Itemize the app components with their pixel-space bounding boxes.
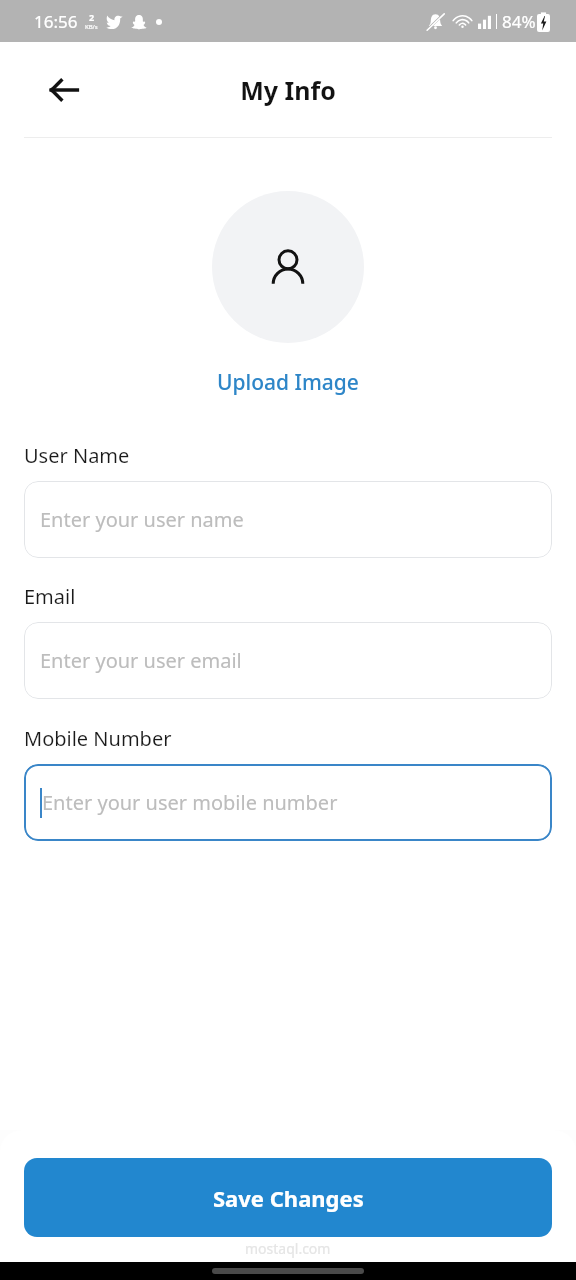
staticText: 16:56 [34,10,78,33]
staticText: 2 [89,11,95,23]
button[interactable]: Profile photo [212,191,364,343]
button[interactable]: Upload Image [211,366,365,399]
staticText: Enter your user name [40,506,244,533]
staticText: 84% [502,10,536,33]
button[interactable]: Enter your user name [24,481,552,558]
staticText: User Name [24,442,130,469]
button[interactable]: Enter your user email [24,622,552,699]
staticText: Enter your user email [40,647,242,674]
staticText: Mobile Number [24,725,172,752]
staticText: KB/s [85,23,98,31]
button[interactable]: Save Changes [24,1158,552,1237]
staticText: Upload Image [217,368,359,397]
staticText: Save Changes [213,1183,364,1213]
staticText: Enter your user mobile number [42,789,338,816]
button[interactable]: Enter your user mobile number [24,764,552,841]
staticText: Email [24,583,76,610]
button[interactable]: Back [40,66,88,114]
staticText: mostaql.com [245,1239,331,1258]
staticText: My Info [240,73,336,107]
